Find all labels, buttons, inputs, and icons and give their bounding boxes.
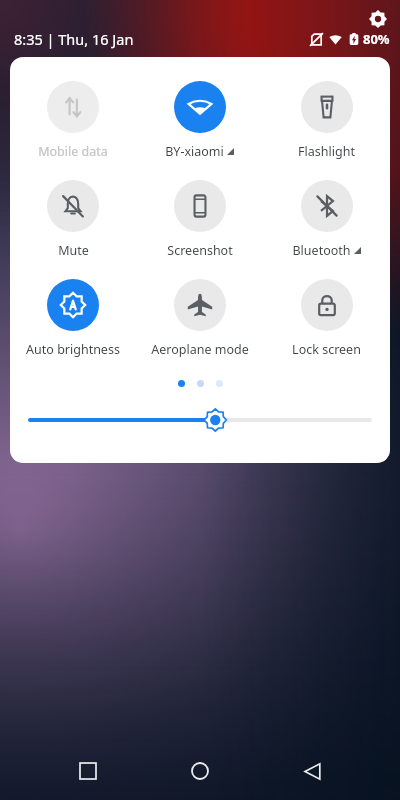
staticText: 8:35 | Thu, 16 Jan — [14, 29, 134, 49]
button[interactable]: Screenshot — [136, 180, 263, 259]
staticText: Mute — [58, 242, 89, 259]
staticText: Screenshot — [167, 242, 233, 259]
staticText: Lock screen — [292, 341, 361, 358]
button[interactable]: Brightness — [30, 403, 370, 437]
button[interactable]: Bluetooth — [263, 180, 390, 259]
staticText: Aeroplane mode — [151, 341, 249, 358]
staticText: Mobile data — [38, 143, 108, 160]
staticText: Flashlight — [298, 143, 355, 160]
button[interactable]: Aeroplane mode — [136, 279, 263, 358]
button[interactable]: Recent apps — [64, 747, 112, 795]
button[interactable]: Mute — [10, 180, 136, 259]
button[interactable]: Mobile data — [10, 81, 136, 160]
button[interactable]: Flashlight — [263, 81, 390, 160]
button[interactable]: Auto brightness — [10, 279, 136, 358]
button[interactable]: Settings — [363, 4, 393, 34]
button[interactable]: BY-xiaomi — [136, 81, 263, 160]
staticText: BY-xiaomi — [165, 143, 224, 160]
staticText: Auto brightness — [26, 341, 120, 358]
staticText: 80% — [363, 30, 390, 48]
staticText: Bluetooth — [292, 242, 351, 259]
button[interactable]: Home — [176, 747, 224, 795]
button[interactable]: Lock screen — [263, 279, 390, 358]
button[interactable]: Back — [288, 747, 336, 795]
